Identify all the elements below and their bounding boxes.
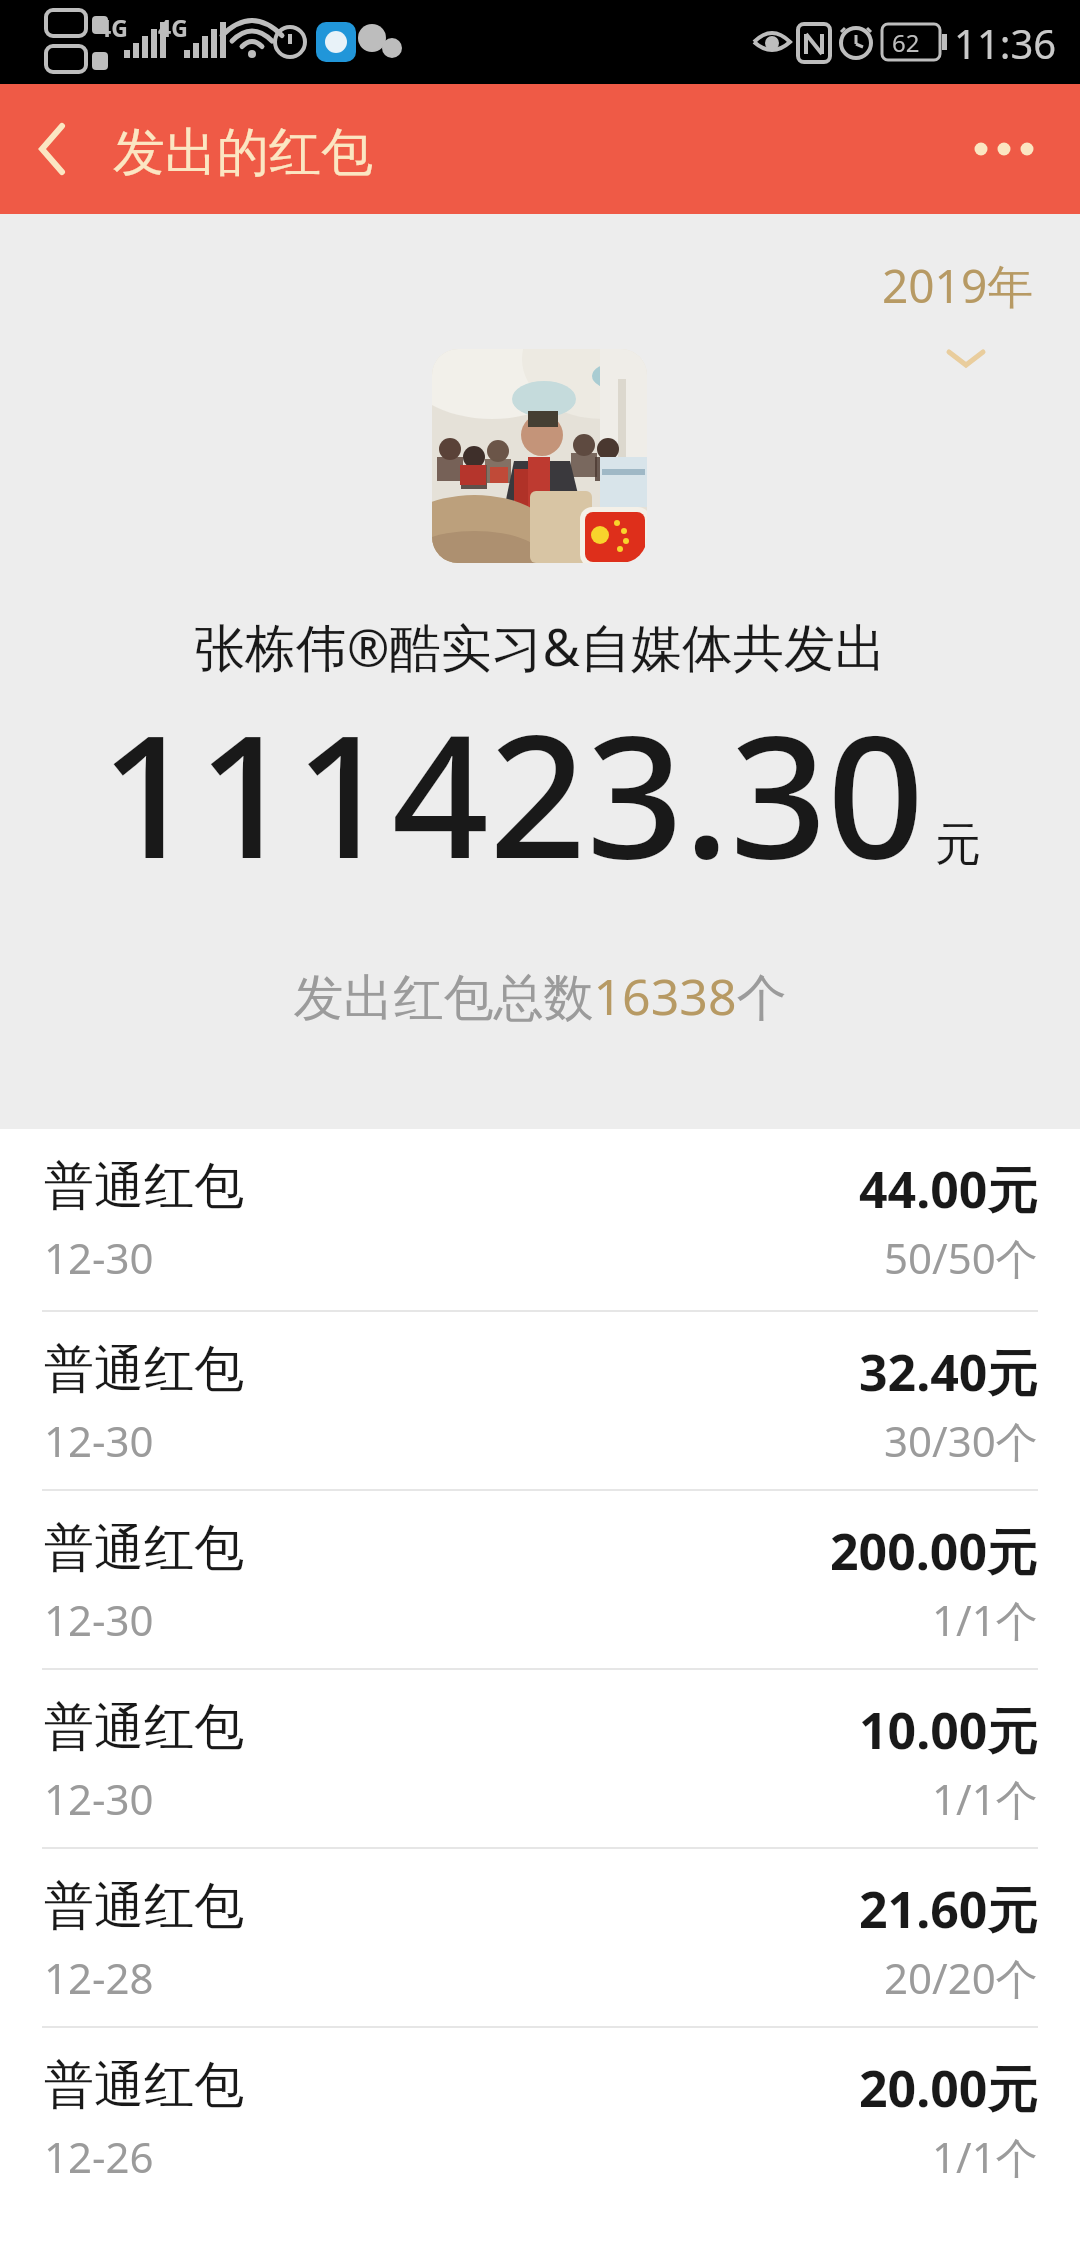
staticText: 200.00元 [830, 1517, 1038, 1585]
staticText: 张栋伟®酷实习&自媒体共发出 [0, 611, 1080, 681]
button[interactable]: 普通红包 [0, 1129, 1080, 1312]
staticText: 32.40元 [859, 1338, 1038, 1406]
staticText: 21.60元 [859, 1875, 1038, 1943]
staticText: 元 [935, 816, 981, 874]
staticText: 1/1个 [932, 1591, 1038, 1648]
staticText: 普通红包 [44, 1517, 244, 1580]
staticText: 30/30个 [884, 1412, 1038, 1469]
staticText: 普通红包 [44, 2054, 244, 2117]
staticText: 111423.30 [100, 676, 925, 908]
button[interactable]: 普通红包 [0, 1312, 1080, 1491]
staticText: 普通红包 [44, 1155, 244, 1218]
staticText: 11:36 [954, 16, 1057, 70]
staticText: 10.00元 [859, 1696, 1038, 1764]
button[interactable] [950, 84, 1080, 214]
staticText: 2019年 [882, 254, 1034, 317]
staticText: 50/50个 [884, 1229, 1038, 1286]
staticText: 20.00元 [859, 2054, 1038, 2122]
staticText: 4G [98, 12, 128, 43]
staticText: 62 [892, 26, 920, 59]
staticText: 发出红包总数16338个 [0, 962, 1080, 1030]
staticText: 12-30 [44, 1229, 154, 1286]
staticText: 44.00元 [859, 1155, 1038, 1223]
staticText: 1/1个 [932, 1770, 1038, 1827]
button[interactable]: 普通红包 [0, 1670, 1080, 1849]
button[interactable] [432, 349, 647, 563]
staticText: 1/1个 [932, 2128, 1038, 2185]
staticText: 12-30 [44, 1591, 154, 1648]
button[interactable] [0, 84, 90, 214]
staticText: 普通红包 [44, 1875, 244, 1938]
button[interactable]: 普通红包 [0, 2028, 1080, 2207]
button[interactable]: 普通红包 [0, 1491, 1080, 1670]
button[interactable]: 2019年 [860, 214, 1080, 394]
staticText: 普通红包 [44, 1338, 244, 1401]
staticText: 发出的红包 [113, 120, 373, 186]
staticText: 普通红包 [44, 1696, 244, 1759]
staticText: 4G [158, 12, 188, 43]
staticText: 12-30 [44, 1412, 154, 1469]
button[interactable]: 普通红包 [0, 1849, 1080, 2028]
staticText: 12-28 [44, 1949, 154, 2006]
staticText: 12-30 [44, 1770, 154, 1827]
staticText: 20/20个 [884, 1949, 1038, 2006]
staticText: 12-26 [44, 2128, 154, 2185]
